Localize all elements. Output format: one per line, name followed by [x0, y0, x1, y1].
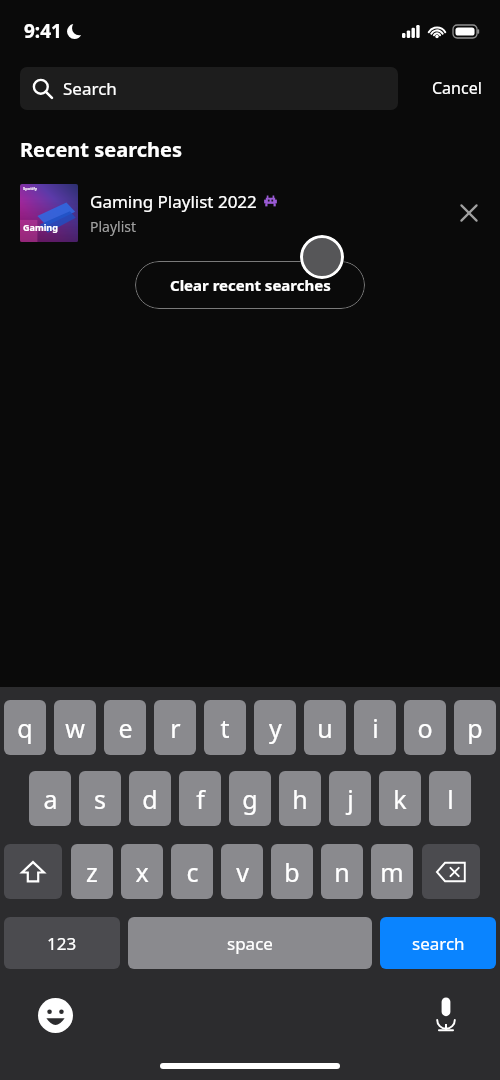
staticText: k [393, 782, 407, 816]
staticText: c [186, 855, 199, 889]
button[interactable]: w [54, 700, 96, 755]
button[interactable]: b [271, 844, 313, 899]
staticText: Gaming [23, 221, 58, 233]
button[interactable]: c [171, 844, 213, 899]
staticText: u [317, 711, 333, 745]
button[interactable]: s [79, 771, 121, 826]
staticText: y [269, 711, 282, 745]
staticText: t [220, 711, 230, 745]
staticText: d [142, 782, 158, 816]
staticText: v [236, 855, 249, 889]
button[interactable]: h [279, 771, 321, 826]
button[interactable]: y [254, 700, 296, 755]
staticText: z [86, 855, 98, 889]
button[interactable]: z [71, 844, 113, 899]
button[interactable]: i [354, 700, 396, 755]
staticText: Clear recent searches [170, 275, 331, 295]
staticText: Recent searches [20, 136, 182, 163]
staticText: space [227, 932, 273, 955]
staticText: f [196, 782, 205, 816]
button[interactable]: Gaming [0, 181, 500, 245]
button[interactable]: Cancel [422, 69, 492, 107]
button[interactable]: Search [20, 67, 398, 110]
button[interactable]: space [128, 917, 372, 969]
button[interactable]: 123 [4, 917, 120, 969]
staticText: p [467, 711, 483, 745]
button[interactable]: r [154, 700, 196, 755]
button[interactable]: k [379, 771, 421, 826]
button[interactable]: d [129, 771, 171, 826]
button[interactable]: m [371, 844, 413, 899]
staticText: o [417, 711, 433, 745]
button[interactable]: j [329, 771, 371, 826]
button[interactable]: Clear recent searches [135, 261, 365, 309]
staticText: l [447, 782, 454, 816]
staticText: n [334, 855, 350, 889]
staticText: w [65, 711, 85, 745]
staticText: Gaming Playlist 2022 [90, 190, 257, 213]
button[interactable]: Shift [4, 844, 62, 899]
button[interactable]: Remove from recent searches [446, 190, 492, 236]
button[interactable]: f [179, 771, 221, 826]
staticText: e [118, 711, 133, 745]
button[interactable]: Backspace [422, 844, 480, 899]
staticText: j [347, 782, 354, 816]
button[interactable]: a [29, 771, 71, 826]
button[interactable]: v [221, 844, 263, 899]
staticText: s [94, 782, 106, 816]
button[interactable]: u [304, 700, 346, 755]
button[interactable]: q [4, 700, 46, 755]
staticText: r [170, 711, 181, 745]
staticText: Playlist [90, 217, 137, 236]
button[interactable]: g [229, 771, 271, 826]
button[interactable]: search [380, 917, 496, 969]
staticText: q [17, 711, 33, 745]
staticText: g [242, 782, 258, 816]
staticText: 9:41 [24, 18, 62, 44]
staticText: m [380, 855, 404, 889]
staticText: h [292, 782, 308, 816]
staticText: b [284, 855, 300, 889]
button[interactable]: p [454, 700, 496, 755]
staticText: Cancel [432, 77, 482, 99]
button[interactable]: Voice input [422, 990, 470, 1038]
staticText: search [412, 932, 465, 955]
button[interactable]: o [404, 700, 446, 755]
button[interactable]: Emoji [32, 992, 78, 1038]
staticText: Spotify [23, 186, 37, 191]
button[interactable]: l [429, 771, 471, 826]
staticText: i [372, 711, 379, 745]
staticText: 123 [47, 932, 77, 955]
staticText: Search [63, 77, 117, 100]
staticText: x [135, 855, 149, 889]
staticText: a [43, 782, 58, 816]
button[interactable]: x [121, 844, 163, 899]
button[interactable]: t [204, 700, 246, 755]
button[interactable]: e [104, 700, 146, 755]
button[interactable]: n [321, 844, 363, 899]
